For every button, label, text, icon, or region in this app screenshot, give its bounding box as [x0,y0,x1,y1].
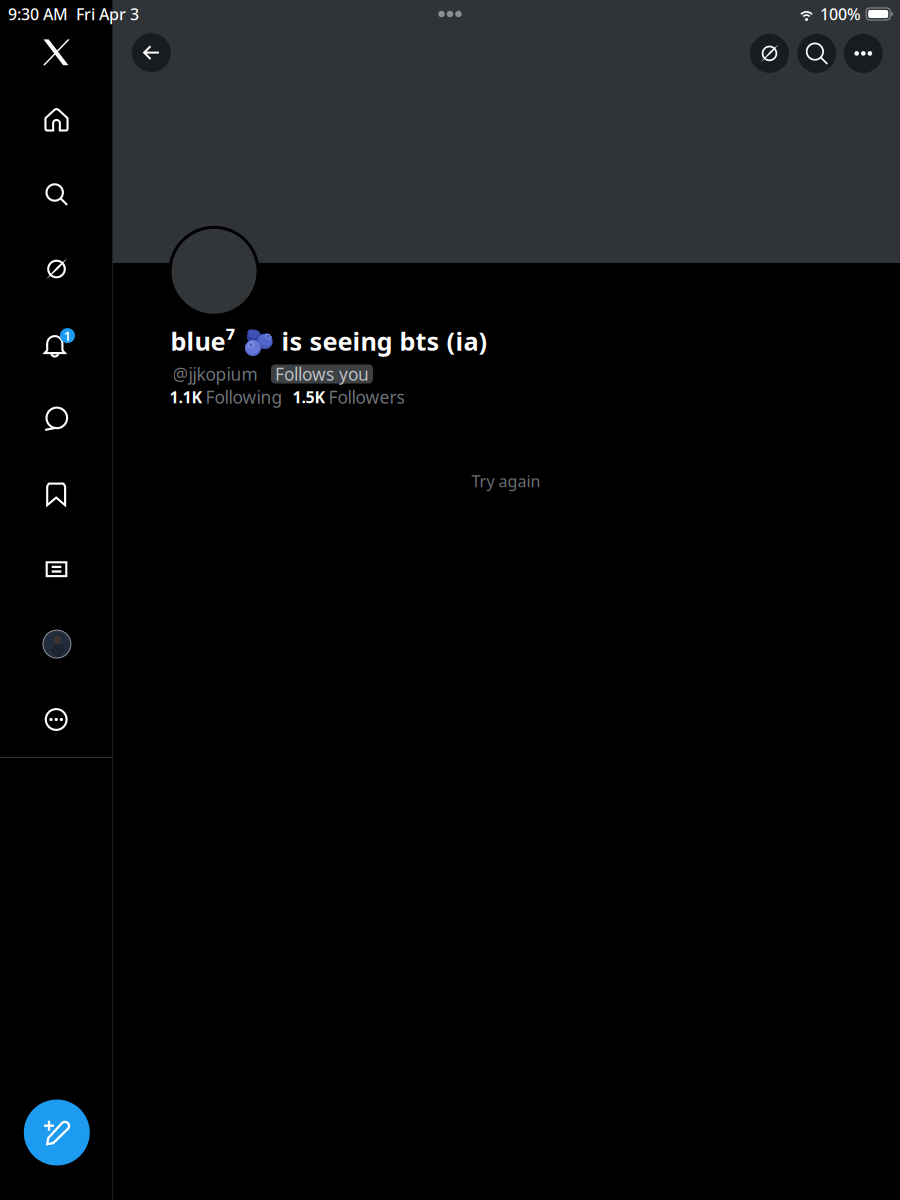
button[interactable]: Search [19,162,94,226]
staticText: 100% [820,3,861,25]
staticText: Try again [471,470,540,492]
button[interactable]: Post [15,1090,99,1174]
staticText: @jjkopium [172,362,257,385]
staticText: 1.1K [169,386,202,408]
button[interactable]: Home [19,88,94,152]
button[interactable]: Grok [19,237,94,301]
button[interactable]: Bookmarks [19,462,94,526]
staticText: blue⁷ 🫐 is seeing bts (ia) [170,324,487,358]
button[interactable]: Lists [19,537,94,601]
staticText: 1.5K [292,386,325,408]
button[interactable]: Search [794,30,840,76]
button[interactable]: More [840,30,886,76]
button[interactable]: Grok [746,30,792,76]
button[interactable]: Messages [19,387,94,451]
staticText: Follows you [275,362,369,385]
button[interactable]: Notifications [19,313,94,377]
button[interactable]: Profile [19,612,94,676]
staticText: 1 [63,327,71,344]
staticText: Followers [328,385,404,408]
button[interactable]: More [19,687,94,751]
staticText: Following [205,385,282,408]
staticText: Fri Apr 3 [76,3,139,25]
button[interactable]: X [19,22,94,82]
button[interactable]: Back [125,27,177,79]
staticText: 9:30 AM [8,3,68,25]
